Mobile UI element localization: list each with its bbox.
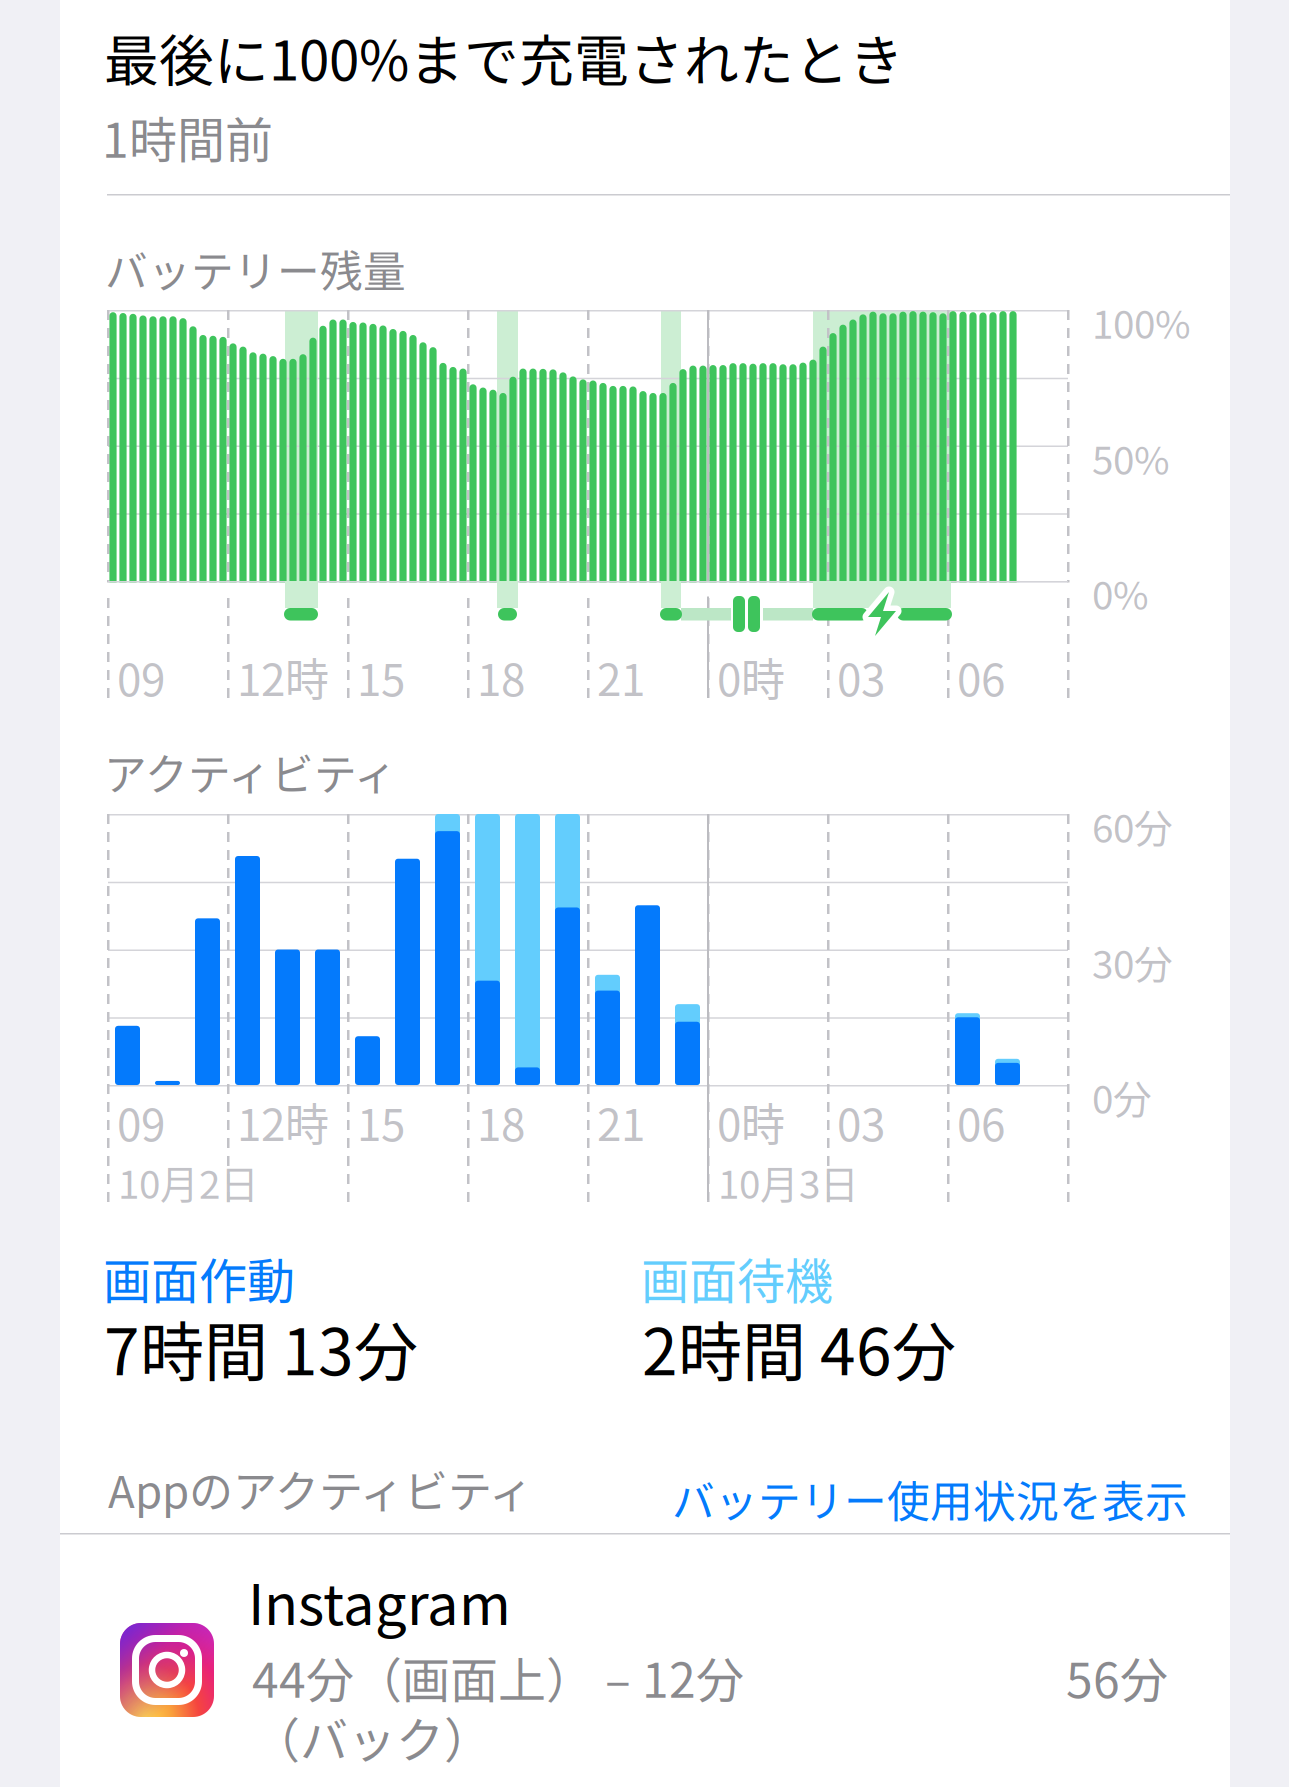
staticText: 30分 (1092, 934, 1173, 990)
staticText: 100% (1092, 294, 1191, 350)
staticText: 0時 (717, 1090, 785, 1154)
staticText: アクティビティ (104, 741, 397, 803)
staticText: 09 (117, 645, 165, 709)
staticText: Instagram (248, 1560, 511, 1641)
button[interactable]: バッテリー使用状況を表示 (0, 0, 700, 62)
staticText: 0時 (717, 645, 785, 709)
staticText: 09 (117, 1090, 165, 1154)
staticText: 12時 (237, 1090, 329, 1154)
staticText: 21 (597, 1090, 645, 1154)
staticText: 06 (957, 645, 1005, 709)
staticText: 21 (597, 645, 645, 709)
staticText: 1時間前 (102, 102, 273, 171)
staticText: 03 (837, 1090, 885, 1154)
staticText: 15 (357, 1090, 405, 1154)
staticText: 最後に100%まで充電されたとき (104, 17, 904, 96)
staticText: バッテリー使用状況を表示 (672, 1468, 1188, 1530)
staticText: 03 (837, 645, 885, 709)
staticText: 10月2日 (118, 1154, 259, 1210)
staticText: 44分（画面上） – 12分 (252, 1642, 744, 1711)
staticText: （バック） (252, 1702, 492, 1771)
staticText: 画面作動 (103, 1243, 295, 1312)
staticText: 18 (477, 645, 525, 709)
staticText: 7時間 13分 (104, 1301, 418, 1394)
staticText: 60分 (1092, 798, 1173, 854)
button[interactable]: Instagram (0, 0, 1289, 1787)
staticText: 画面待機 (641, 1243, 833, 1312)
staticText: 56分 (1066, 1642, 1168, 1711)
staticText: 0% (1092, 565, 1149, 621)
staticText: 2時間 46分 (642, 1301, 956, 1394)
staticText: Appのアクティビティ (108, 1457, 533, 1521)
staticText: 50% (1092, 430, 1170, 486)
staticText: 06 (957, 1090, 1005, 1154)
staticText: 0分 (1092, 1069, 1152, 1125)
staticText: 10月3日 (718, 1154, 859, 1210)
staticText: 15 (357, 645, 405, 709)
staticText: 18 (477, 1090, 525, 1154)
staticText: バッテリー残量 (105, 238, 406, 300)
staticText: 12時 (237, 645, 329, 709)
